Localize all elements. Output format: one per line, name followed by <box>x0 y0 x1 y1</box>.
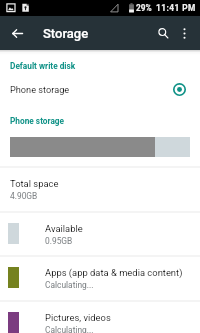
button[interactable]: Total space <box>0 166 200 211</box>
staticText: Total space <box>10 178 59 189</box>
staticText: Storage <box>43 26 89 41</box>
staticText: 0.95GB <box>45 236 73 246</box>
staticText: Calculating... <box>45 325 94 333</box>
staticText: Apps (app data & media content) <box>45 267 183 278</box>
button[interactable]: Phone storage <box>0 77 200 101</box>
staticText: 29% <box>136 3 152 13</box>
button[interactable]: Pictures, videos <box>0 300 200 333</box>
button[interactable]: Apps (app data & media content) <box>0 255 200 300</box>
staticText: 4.90GB <box>10 191 38 201</box>
staticText: 11:41 PM <box>156 3 196 13</box>
staticText: Default write disk <box>10 61 76 71</box>
staticText: Phone storage <box>10 84 70 95</box>
staticText: Calculating... <box>45 280 94 290</box>
staticText: Available <box>45 223 83 234</box>
button[interactable]: Search <box>149 19 177 47</box>
staticText: Phone storage <box>10 116 65 126</box>
button[interactable]: Available <box>0 211 200 255</box>
staticText: Pictures, videos <box>45 312 111 323</box>
button[interactable]: More options <box>171 20 197 46</box>
button[interactable]: Back <box>1 17 34 50</box>
